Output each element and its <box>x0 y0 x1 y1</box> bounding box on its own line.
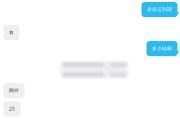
staticText: 身份证到期 <box>147 6 172 12</box>
button[interactable]: 身份证到期 <box>141 2 179 17</box>
button[interactable]: 有 <box>2 25 19 40</box>
staticText: 多少钱啊 <box>152 46 172 52</box>
staticText: 25 <box>9 106 15 112</box>
button[interactable]: 网件 <box>2 83 24 98</box>
button[interactable]: Hidden message <box>59 60 130 79</box>
button[interactable]: 25 <box>2 101 20 117</box>
staticText: 有 <box>9 29 14 35</box>
button[interactable]: 多少钱啊 <box>146 41 179 56</box>
staticText: 网件 <box>9 88 19 94</box>
